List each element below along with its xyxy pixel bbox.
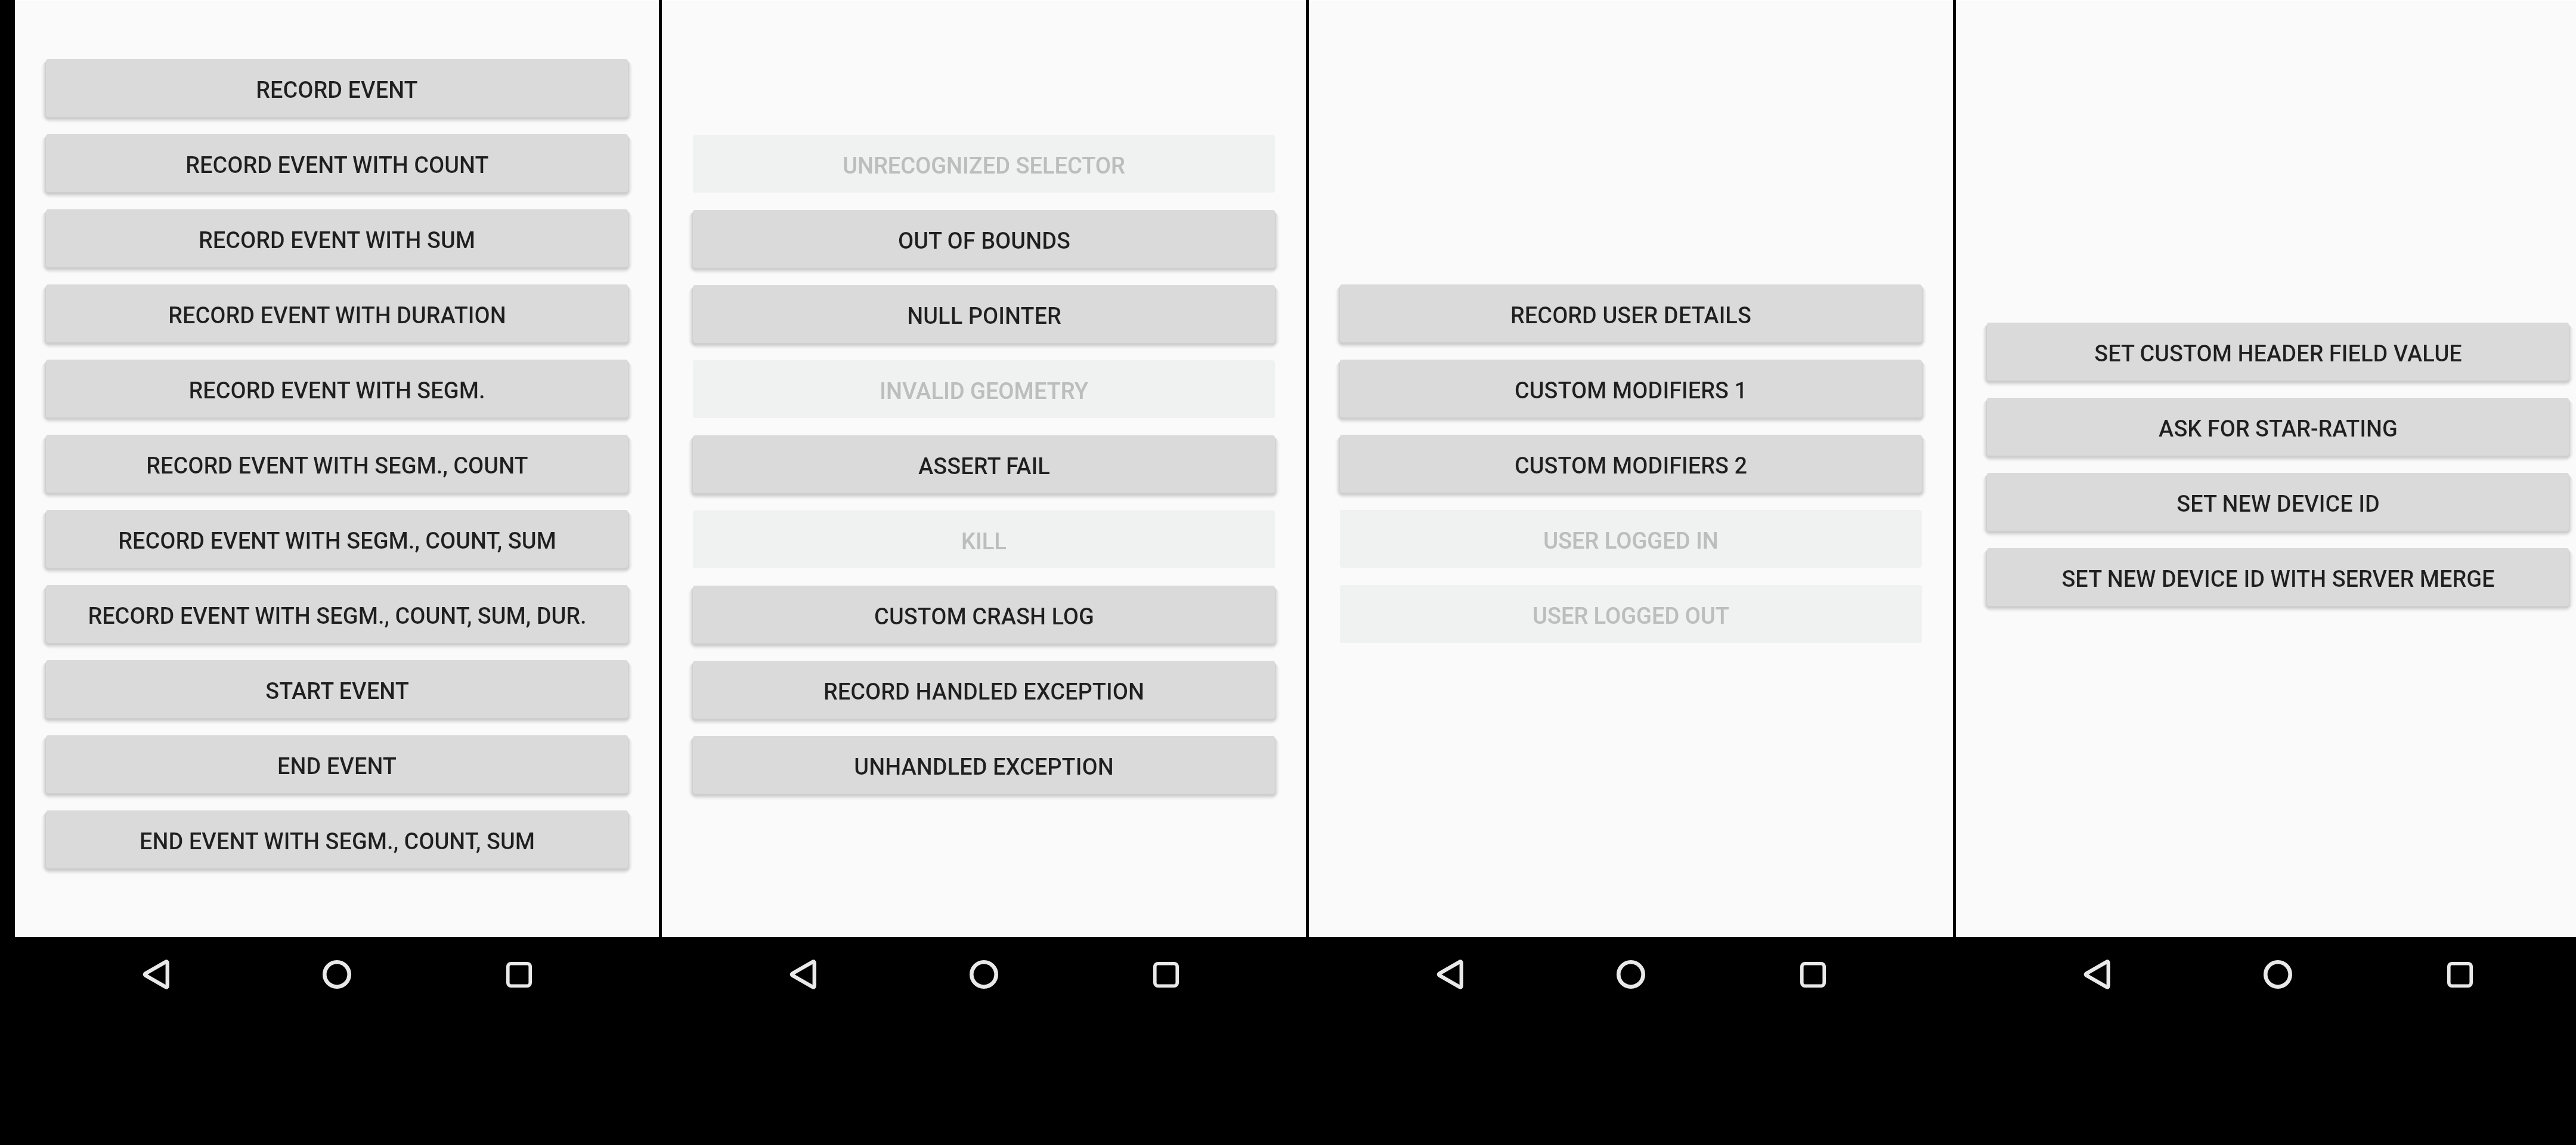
staticText: SET CUSTOM HEADER FIELD VALUE [2094, 341, 2462, 367]
button[interactable]: Recent apps [1139, 948, 1193, 1001]
button[interactable]: Recent apps [492, 948, 546, 1001]
button[interactable]: SET NEW DEVICE ID [1987, 473, 2569, 531]
button[interactable]: RECORD HANDLED EXCEPTION [693, 661, 1275, 719]
staticText: RECORD EVENT WITH COUNT [185, 152, 489, 179]
staticText: RECORD USER DETAILS [1510, 302, 1751, 329]
button[interactable]: Recent apps [2433, 948, 2487, 1001]
button[interactable]: RECORD EVENT WITH SUM [46, 209, 628, 267]
button[interactable]: USER LOGGED OUT [1340, 585, 1922, 643]
button[interactable]: UNHANDLED EXCEPTION [693, 736, 1275, 794]
staticText: CUSTOM MODIFIERS 1 [1515, 377, 1747, 404]
button[interactable]: RECORD USER DETAILS [1340, 284, 1922, 342]
staticText: NULL POINTER [907, 303, 1061, 330]
button[interactable]: Back [1422, 948, 1476, 1001]
button[interactable]: CUSTOM MODIFIERS 2 [1340, 435, 1922, 493]
staticText: RECORD EVENT WITH SEGM., COUNT, SUM [118, 528, 556, 555]
staticText: USER LOGGED IN [1543, 528, 1719, 555]
button[interactable]: Home [2251, 948, 2305, 1001]
staticText: RECORD EVENT WITH SUM [199, 227, 475, 254]
button[interactable]: NULL POINTER [693, 285, 1275, 343]
staticText: SET NEW DEVICE ID WITH SERVER MERGE [2061, 566, 2495, 593]
button[interactable]: CUSTOM MODIFIERS 1 [1340, 360, 1922, 417]
button[interactable]: SET NEW DEVICE ID WITH SERVER MERGE [1987, 548, 2569, 606]
button[interactable]: UNRECOGNIZED SELECTOR [693, 135, 1275, 193]
button[interactable]: RECORD EVENT WITH SEGM., COUNT, SUM [46, 510, 628, 568]
button[interactable]: RECORD EVENT WITH DURATION [46, 284, 628, 342]
staticText: USER LOGGED OUT [1532, 603, 1729, 630]
button[interactable]: START EVENT [46, 660, 628, 718]
staticText: RECORD EVENT WITH DURATION [168, 302, 506, 329]
button[interactable]: KILL [693, 510, 1275, 568]
staticText: START EVENT [265, 678, 409, 705]
button[interactable]: END EVENT WITH SEGM., COUNT, SUM [46, 810, 628, 868]
button[interactable]: OUT OF BOUNDS [693, 210, 1275, 268]
button[interactable]: RECORD EVENT WITH SEGM., COUNT [46, 435, 628, 493]
button[interactable]: CUSTOM CRASH LOG [693, 586, 1275, 643]
staticText: UNHANDLED EXCEPTION [854, 754, 1114, 781]
button[interactable]: RECORD EVENT WITH COUNT [46, 134, 628, 192]
staticText: KILL [961, 528, 1007, 555]
staticText: END EVENT WITH SEGM., COUNT, SUM [140, 828, 535, 855]
button[interactable]: END EVENT [46, 735, 628, 793]
staticText: END EVENT [277, 753, 397, 780]
staticText: CUSTOM MODIFIERS 2 [1515, 453, 1747, 479]
button[interactable]: SET CUSTOM HEADER FIELD VALUE [1987, 323, 2569, 380]
button[interactable]: ASSERT FAIL [693, 435, 1275, 493]
button[interactable]: Home [957, 948, 1011, 1001]
staticText: OUT OF BOUNDS [898, 228, 1070, 255]
button[interactable]: Recent apps [1786, 948, 1840, 1001]
button[interactable]: ASK FOR STAR-RATING [1987, 398, 2569, 456]
button[interactable]: INVALID GEOMETRY [693, 360, 1275, 418]
button[interactable]: Back [128, 948, 182, 1001]
staticText: ASK FOR STAR-RATING [2159, 416, 2398, 442]
staticText: ASSERT FAIL [918, 453, 1050, 480]
staticText: CUSTOM CRASH LOG [874, 604, 1094, 630]
button[interactable]: Home [1604, 948, 1658, 1001]
staticText: RECORD EVENT [256, 77, 418, 104]
button[interactable]: RECORD EVENT WITH SEGM. [46, 360, 628, 417]
button[interactable]: USER LOGGED IN [1340, 510, 1922, 568]
staticText: RECORD EVENT WITH SEGM., COUNT, SUM, DUR… [88, 603, 587, 630]
button[interactable]: Home [310, 948, 364, 1001]
button[interactable]: RECORD EVENT [46, 59, 628, 117]
button[interactable]: RECORD EVENT WITH SEGM., COUNT, SUM, DUR… [46, 585, 628, 643]
staticText: RECORD HANDLED EXCEPTION [823, 679, 1144, 705]
button[interactable]: Back [2069, 948, 2123, 1001]
staticText: UNRECOGNIZED SELECTOR [843, 153, 1125, 180]
staticText: INVALID GEOMETRY [880, 378, 1088, 405]
staticText: SET NEW DEVICE ID [2176, 491, 2380, 518]
button[interactable]: Back [775, 948, 829, 1001]
staticText: RECORD EVENT WITH SEGM. [188, 377, 485, 404]
staticText: RECORD EVENT WITH SEGM., COUNT [146, 453, 528, 479]
